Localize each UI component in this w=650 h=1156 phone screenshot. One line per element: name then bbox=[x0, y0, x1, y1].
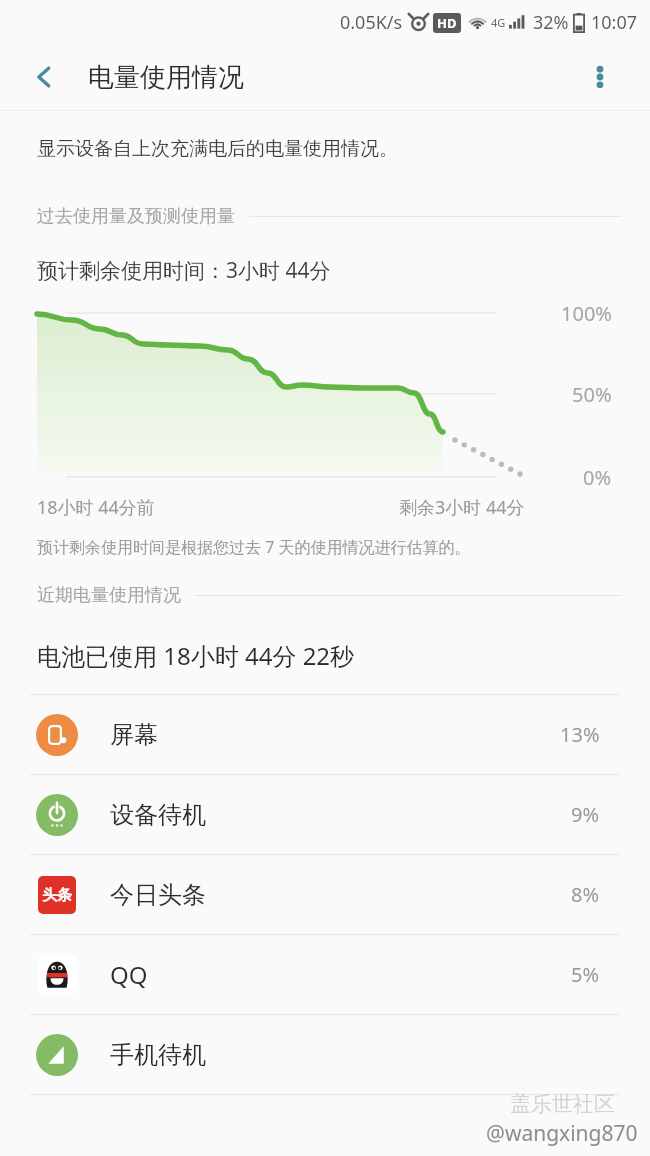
staticText: 8% bbox=[571, 881, 600, 908]
staticText: 100% bbox=[561, 300, 612, 327]
staticText: 电量使用情况 bbox=[88, 61, 244, 94]
staticText: 10:07 bbox=[591, 10, 638, 35]
staticText: 50% bbox=[572, 381, 612, 408]
staticText: 屏幕 bbox=[110, 720, 158, 750]
staticText: QQ bbox=[110, 958, 148, 991]
button[interactable]: 手机待机 bbox=[0, 1015, 650, 1094]
staticText: 0% bbox=[583, 464, 612, 491]
button[interactable]: 设备待机 bbox=[0, 775, 650, 854]
staticText: 今日头条 bbox=[110, 880, 206, 910]
staticText: 近期电量使用情况 bbox=[37, 584, 181, 607]
staticText: 9% bbox=[571, 801, 600, 828]
button[interactable]: 头条 bbox=[0, 855, 650, 934]
staticText: 18小时 44分前 bbox=[37, 495, 155, 520]
staticText: 0.05K/s bbox=[340, 10, 403, 35]
staticText: 显示设备自上次充满电后的电量使用情况。 bbox=[37, 137, 398, 161]
staticText: 剩余3小时 44分 bbox=[399, 495, 525, 520]
staticText: 预计剩余使用时间：3小时 44分 bbox=[37, 256, 331, 285]
staticText: 5% bbox=[571, 961, 600, 988]
staticText: @wangxing870 bbox=[486, 1119, 638, 1148]
staticText: HD bbox=[437, 14, 457, 32]
button[interactable]: More options bbox=[576, 53, 624, 101]
button[interactable]: QQ bbox=[0, 935, 650, 1014]
button[interactable]: Back bbox=[20, 53, 68, 101]
staticText: 32% bbox=[533, 10, 569, 35]
staticText: 设备待机 bbox=[110, 800, 206, 830]
staticText: 手机待机 bbox=[110, 1040, 206, 1070]
staticText: 过去使用量及预测使用量 bbox=[37, 205, 235, 228]
staticText: 盖乐世社区 bbox=[510, 1091, 615, 1117]
staticText: 13% bbox=[560, 721, 600, 748]
staticText: 4G bbox=[491, 15, 506, 30]
staticText: 电池已使用 18小时 44分 22秒 bbox=[37, 639, 355, 672]
staticText: 预计剩余使用时间是根据您过去 7 天的使用情况进行估算的。 bbox=[37, 536, 471, 558]
staticText: 头条 bbox=[42, 886, 72, 905]
button[interactable]: 屏幕 bbox=[0, 695, 650, 774]
